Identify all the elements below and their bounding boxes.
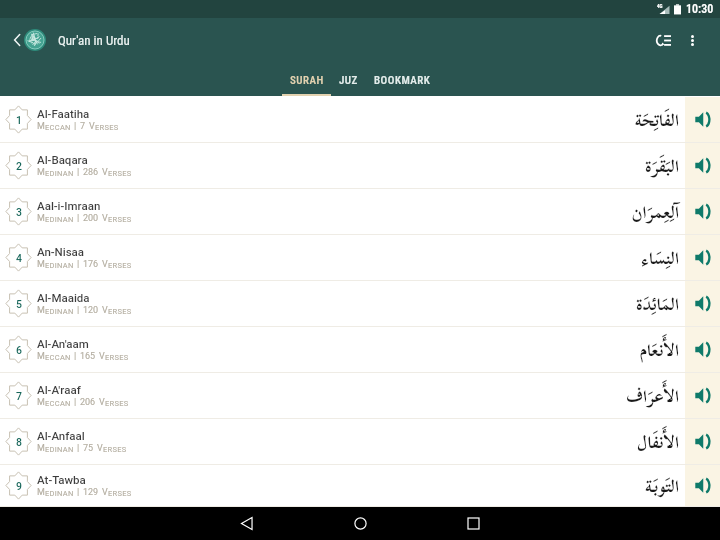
button[interactable]: 4	[0, 235, 720, 281]
staticText: M	[37, 487, 45, 498]
staticText: ERSES	[108, 169, 132, 178]
button[interactable]: SURAH	[282, 62, 331, 96]
staticText: Qur'an in Urdu	[58, 33, 130, 48]
staticText: 286	[83, 167, 99, 178]
staticText: 129	[83, 487, 99, 498]
staticText: Al-A'raaf	[37, 383, 81, 396]
staticText: V	[102, 487, 108, 498]
staticText: ERSES	[105, 353, 129, 362]
staticText: |	[74, 121, 77, 132]
button[interactable]: Sort order	[638, 21, 676, 59]
staticText: 165	[80, 351, 96, 362]
staticText: M	[37, 213, 45, 224]
button[interactable]: 9	[0, 465, 720, 507]
staticText: المَائِدَة	[636, 287, 679, 322]
staticText: 4G	[657, 3, 663, 9]
staticText: V	[102, 259, 108, 270]
staticText: |	[77, 305, 80, 316]
button[interactable]: 1	[0, 97, 720, 143]
staticText: 206	[80, 397, 96, 408]
button[interactable]: Play audio	[685, 281, 720, 327]
staticText: |	[77, 167, 80, 178]
staticText: An-Nisaa	[37, 245, 85, 258]
staticText: ERSES	[95, 123, 119, 132]
button[interactable]: Back	[0, 18, 23, 62]
button[interactable]: Play audio	[685, 465, 720, 507]
button[interactable]: Recent apps	[445, 507, 501, 540]
staticText: EDINAN	[45, 445, 74, 454]
staticText: البَقَرَة	[644, 149, 679, 184]
button[interactable]: Play audio	[685, 419, 720, 465]
button[interactable]: 2	[0, 143, 720, 189]
staticText: Al-Baqara	[37, 153, 88, 166]
staticText: الفَاتِحَة	[634, 103, 679, 138]
staticText: V	[99, 351, 105, 362]
staticText: ERSES	[105, 399, 129, 408]
staticText: 3	[16, 206, 22, 218]
button[interactable]: Home	[332, 507, 388, 540]
staticText: ECCAN	[45, 353, 71, 362]
staticText: 1	[16, 114, 22, 126]
staticText: ERSES	[108, 215, 132, 224]
button[interactable]: Play audio	[685, 143, 720, 189]
button[interactable]: Play audio	[685, 235, 720, 281]
staticText: الأَنعَام	[639, 333, 679, 368]
staticText: |	[74, 397, 77, 408]
button[interactable]: Play audio	[685, 373, 720, 419]
button[interactable]: 6	[0, 327, 720, 373]
button[interactable]: Back	[219, 507, 275, 540]
staticText: V	[102, 213, 108, 224]
staticText: Al-Faatiha	[37, 107, 90, 120]
staticText: الأَعرَاف	[626, 379, 679, 414]
button[interactable]: BOOKMARK	[366, 62, 438, 96]
staticText: Al-Anfaal	[37, 429, 85, 442]
staticText: 200	[83, 213, 99, 224]
staticText: 176	[83, 259, 99, 270]
staticText: M	[37, 121, 45, 132]
staticText: 8	[16, 436, 22, 448]
staticText: 10:30	[686, 2, 714, 16]
staticText: EDINAN	[45, 169, 74, 178]
staticText: EDINAN	[45, 307, 74, 316]
button[interactable]: Play audio	[685, 189, 720, 235]
staticText: EDINAN	[45, 489, 74, 498]
button[interactable]: 8	[0, 419, 720, 465]
button[interactable]: More options	[676, 24, 708, 56]
staticText: ERSES	[103, 445, 127, 454]
staticText: النِسَاء	[641, 241, 679, 276]
staticText: M	[37, 259, 45, 270]
button[interactable]: 5	[0, 281, 720, 327]
button[interactable]: Play audio	[685, 97, 720, 143]
button[interactable]: JUZ	[331, 62, 366, 96]
staticText: V	[102, 305, 108, 316]
staticText: Al-An'aam	[37, 337, 89, 350]
staticText: V	[89, 121, 95, 132]
staticText: SURAH	[290, 74, 324, 87]
button[interactable]: Play audio	[685, 327, 720, 373]
staticText: 5	[16, 298, 22, 310]
staticText: 120	[83, 305, 99, 316]
staticText: 7	[80, 121, 86, 132]
staticText: EDINAN	[45, 261, 74, 270]
staticText: التَوبَة	[644, 469, 679, 504]
button[interactable]: 3	[0, 189, 720, 235]
button[interactable]: 7	[0, 373, 720, 419]
